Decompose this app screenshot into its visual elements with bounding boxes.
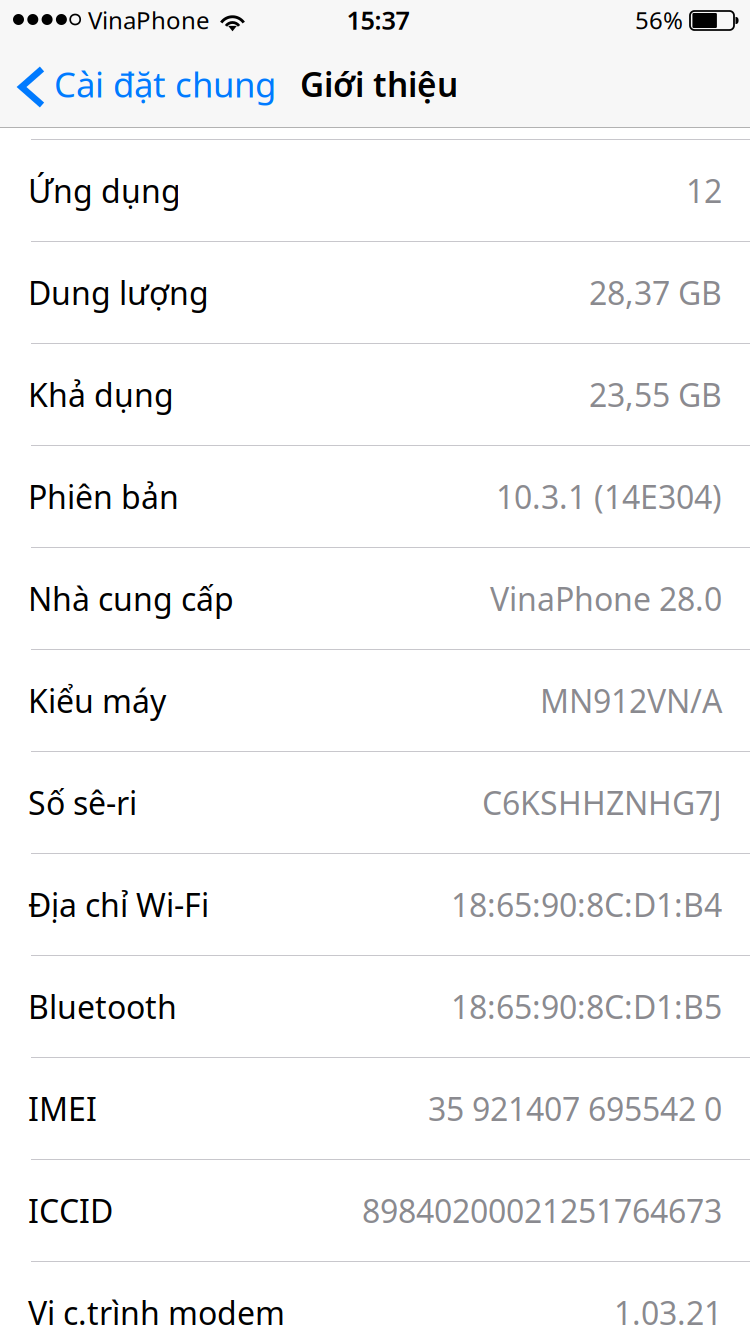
staticText: VinaPhone — [88, 4, 210, 36]
staticText: 10.3.1 (14E304) — [496, 475, 722, 518]
staticText: VinaPhone 28.0 — [490, 577, 722, 620]
staticText: 12 — [686, 169, 722, 212]
staticText: C6KSHHZNHG7J — [482, 781, 722, 824]
staticText: Cài đặt chung — [54, 61, 276, 107]
staticText: Kiểu máy — [28, 679, 166, 722]
button[interactable]: ICCID — [0, 1159, 750, 1261]
button[interactable]: Số sê-ri — [0, 751, 750, 853]
button[interactable]: Cài đặt chung — [0, 40, 282, 128]
staticText: Phiên bản — [28, 475, 179, 518]
staticText: 15:37 — [346, 3, 409, 37]
button[interactable]: Dung lượng — [0, 241, 750, 343]
button[interactable]: IMEI — [0, 1057, 750, 1159]
staticText: 1.03.21 — [614, 1291, 722, 1334]
button[interactable]: Ứng dụng — [0, 139, 750, 241]
staticText: Bluetooth — [28, 985, 177, 1028]
button[interactable]: Địa chỉ Wi-Fi — [0, 853, 750, 955]
staticText: 56% — [635, 4, 683, 36]
button[interactable]: Khả dụng — [0, 343, 750, 445]
staticText: MN912VN/A — [540, 679, 722, 722]
staticText: Giới thiệu — [300, 62, 458, 106]
staticText: Dung lượng — [28, 271, 209, 314]
staticText: ICCID — [28, 1189, 113, 1232]
button[interactable]: Kiểu máy — [0, 649, 750, 751]
staticText: 23,55 GB — [589, 373, 722, 416]
staticText: Khả dụng — [28, 373, 174, 416]
staticText: Số sê-ri — [28, 781, 137, 824]
staticText: Ứng dụng — [28, 169, 181, 212]
button[interactable]: Bluetooth — [0, 955, 750, 1057]
button[interactable]: Phiên bản — [0, 445, 750, 547]
staticText: 35 921407 695542 0 — [428, 1087, 722, 1130]
button[interactable]: Vi c.trình modem — [0, 1261, 750, 1334]
staticText: 28,37 GB — [589, 271, 722, 314]
staticText: Nhà cung cấp — [28, 577, 234, 620]
staticText: Vi c.trình modem — [28, 1291, 285, 1334]
staticText: 89840200021251764673 — [362, 1189, 722, 1232]
staticText: 18:65:90:8C:D1:B4 — [451, 883, 722, 926]
staticText: IMEI — [28, 1087, 97, 1130]
staticText: Địa chỉ Wi-Fi — [28, 883, 209, 926]
button[interactable]: Nhà cung cấp — [0, 547, 750, 649]
staticText: 18:65:90:8C:D1:B5 — [451, 985, 722, 1028]
